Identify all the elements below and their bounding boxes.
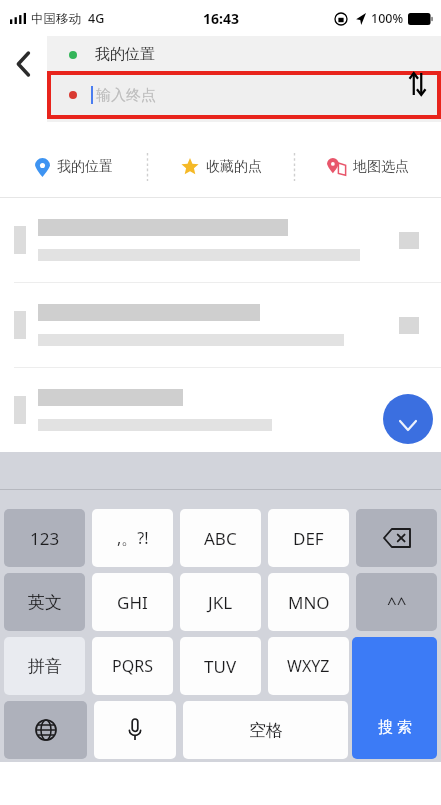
button[interactable]: DEF xyxy=(268,509,349,567)
staticText: DEF xyxy=(293,527,324,550)
button[interactable]: 我的位置 xyxy=(0,136,147,198)
staticText: 搜 索 xyxy=(378,716,412,736)
staticText: 16:43 xyxy=(203,9,239,28)
button[interactable]: 我的位置 xyxy=(47,39,441,70)
button[interactable]: 收藏的点 xyxy=(148,136,294,198)
staticText: 地图选点 xyxy=(353,158,409,176)
staticText: MNO xyxy=(288,591,330,614)
button[interactable]: ,。?! xyxy=(92,509,173,567)
button[interactable]: 语音输入 xyxy=(94,701,176,759)
button[interactable]: GHI xyxy=(92,573,173,631)
staticText: WXYZ xyxy=(287,655,330,677)
button[interactable]: 搜 索 xyxy=(352,637,437,759)
staticText: 我的位置 xyxy=(95,45,155,64)
staticText: 拼音 xyxy=(28,656,62,677)
staticText: ,。?! xyxy=(117,527,149,549)
button[interactable]: 英文 xyxy=(4,573,85,631)
button[interactable]: PQRS xyxy=(92,637,173,695)
staticText: 空格 xyxy=(249,720,283,741)
staticText: 123 xyxy=(30,527,60,550)
button[interactable]: ABC xyxy=(180,509,261,567)
staticText: 英文 xyxy=(28,592,62,613)
button[interactable]: JKL xyxy=(180,573,261,631)
button[interactable]: 123 xyxy=(4,509,85,567)
staticText: PQRS xyxy=(112,655,153,677)
button[interactable]: 空格 xyxy=(183,701,348,759)
staticText: 我的位置 xyxy=(57,158,113,176)
button[interactable]: 拼音 xyxy=(4,637,85,695)
button[interactable]: 输入终点 xyxy=(51,75,437,115)
button[interactable]: 展开 xyxy=(383,394,433,444)
staticText: 4G xyxy=(88,10,105,27)
staticText: ^^ xyxy=(387,591,407,614)
staticText: GHI xyxy=(117,591,148,614)
button[interactable]: 返回 xyxy=(0,42,46,86)
staticText: 100% xyxy=(371,10,404,27)
button[interactable]: MNO xyxy=(268,573,349,631)
staticText: 中国移动 xyxy=(31,11,81,27)
staticText: TUV xyxy=(204,655,237,678)
staticText: JKL xyxy=(208,591,233,614)
button[interactable]: WXYZ xyxy=(268,637,349,695)
staticText: 输入终点 xyxy=(96,86,156,105)
button[interactable]: ^^ xyxy=(356,573,437,631)
button[interactable]: 地图选点 xyxy=(295,136,441,198)
button[interactable]: 切换输入法 xyxy=(4,701,87,759)
button[interactable]: TUV xyxy=(180,637,261,695)
button[interactable]: 删除 xyxy=(356,509,437,567)
button[interactable]: 交换起终点 xyxy=(397,66,437,102)
staticText: 收藏的点 xyxy=(206,158,262,176)
staticText: ABC xyxy=(204,527,237,550)
